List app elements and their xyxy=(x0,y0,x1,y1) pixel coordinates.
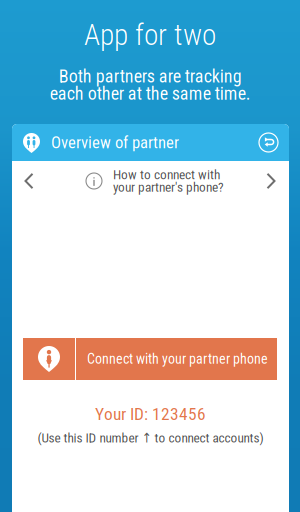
button[interactable]: Swap partner xyxy=(250,124,287,161)
staticText: How to connect with your partner's phone… xyxy=(113,167,224,195)
staticText: Both partners are tracking each other at… xyxy=(49,66,250,104)
button[interactable]: Previous partner xyxy=(14,160,44,202)
staticText: Your ID: 123456 xyxy=(95,404,206,424)
staticText: Connect with your partner phone xyxy=(87,351,268,367)
button[interactable]: Next partner xyxy=(256,160,286,202)
button[interactable]: Connect with your partner phone xyxy=(23,338,277,380)
staticText: (Use this ID number ↑ to connect account… xyxy=(37,430,263,446)
button[interactable]: How to connect with your partner's phone… xyxy=(80,160,230,202)
staticText: App for two xyxy=(84,18,216,52)
staticText: Overview of partner xyxy=(51,133,179,152)
